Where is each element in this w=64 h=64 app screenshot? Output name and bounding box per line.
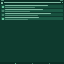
- button[interactable]: Home: [13, 62, 17, 64]
- button[interactable]: [1, 17, 63, 20]
- button[interactable]: Menu: [1, 2, 3, 4]
- button[interactable]: [1, 5, 63, 8]
- button[interactable]: Profile: [47, 62, 51, 64]
- button[interactable]: [1, 13, 63, 16]
- button[interactable]: [1, 9, 63, 12]
- button[interactable]: Explore: [30, 62, 34, 64]
